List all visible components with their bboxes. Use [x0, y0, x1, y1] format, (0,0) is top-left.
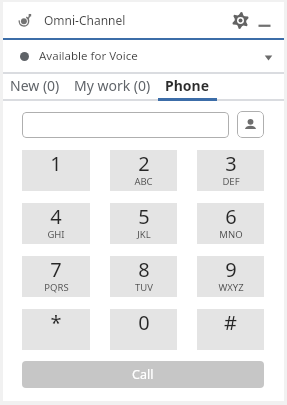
staticText: My work (0) — [74, 76, 151, 95]
staticText: 0 — [138, 309, 150, 336]
button[interactable]: 8 — [110, 256, 177, 297]
button[interactable]: Call — [22, 361, 264, 388]
button[interactable] — [22, 112, 229, 138]
button[interactable]: My work (0) — [67, 74, 158, 101]
staticText: New (0) — [10, 76, 60, 95]
staticText: # — [224, 309, 237, 336]
staticText: Available for Voice — [39, 48, 138, 64]
staticText: Call — [132, 366, 154, 383]
button[interactable]: New (0) — [3, 74, 67, 101]
button[interactable]: Available for Voice — [3, 40, 284, 72]
staticText: JKL — [137, 228, 151, 241]
staticText: Omni-Channel — [44, 12, 126, 28]
staticText: 5 — [138, 203, 150, 230]
staticText: 6 — [225, 203, 237, 230]
staticText: 8 — [138, 256, 150, 283]
staticText: ABC — [134, 175, 153, 188]
staticText: WXYZ — [218, 281, 244, 294]
staticText: TUV — [135, 281, 153, 294]
button[interactable]: 5 — [110, 203, 177, 244]
staticText: 7 — [50, 256, 62, 283]
staticText: 4 — [50, 203, 62, 230]
staticText: DEF — [222, 175, 240, 188]
button[interactable]: Omni-Channel — [16, 10, 36, 30]
button[interactable]: * — [22, 309, 90, 350]
staticText: * — [50, 309, 62, 336]
button[interactable]: Contacts — [237, 111, 264, 138]
button[interactable]: 4 — [22, 203, 90, 244]
staticText: 1 — [50, 150, 62, 177]
staticText: 9 — [225, 256, 237, 283]
button[interactable]: Settings — [229, 9, 251, 31]
staticText: GHI — [47, 228, 65, 241]
button[interactable]: 7 — [22, 256, 90, 297]
staticText: Phone — [165, 76, 210, 95]
staticText: 3 — [225, 150, 237, 177]
staticText: PQRS — [44, 281, 69, 294]
staticText: MNO — [219, 228, 243, 241]
button[interactable]: Phone — [158, 74, 217, 101]
button[interactable]: 0 — [110, 309, 177, 350]
button[interactable]: Minimize — [255, 11, 273, 29]
button[interactable]: # — [197, 309, 264, 350]
button[interactable]: 9 — [197, 256, 264, 297]
button[interactable]: 2 — [110, 150, 177, 191]
button[interactable]: 1 — [22, 150, 90, 191]
button[interactable]: 6 — [197, 203, 264, 244]
button[interactable]: 3 — [197, 150, 264, 191]
staticText: 2 — [138, 150, 150, 177]
